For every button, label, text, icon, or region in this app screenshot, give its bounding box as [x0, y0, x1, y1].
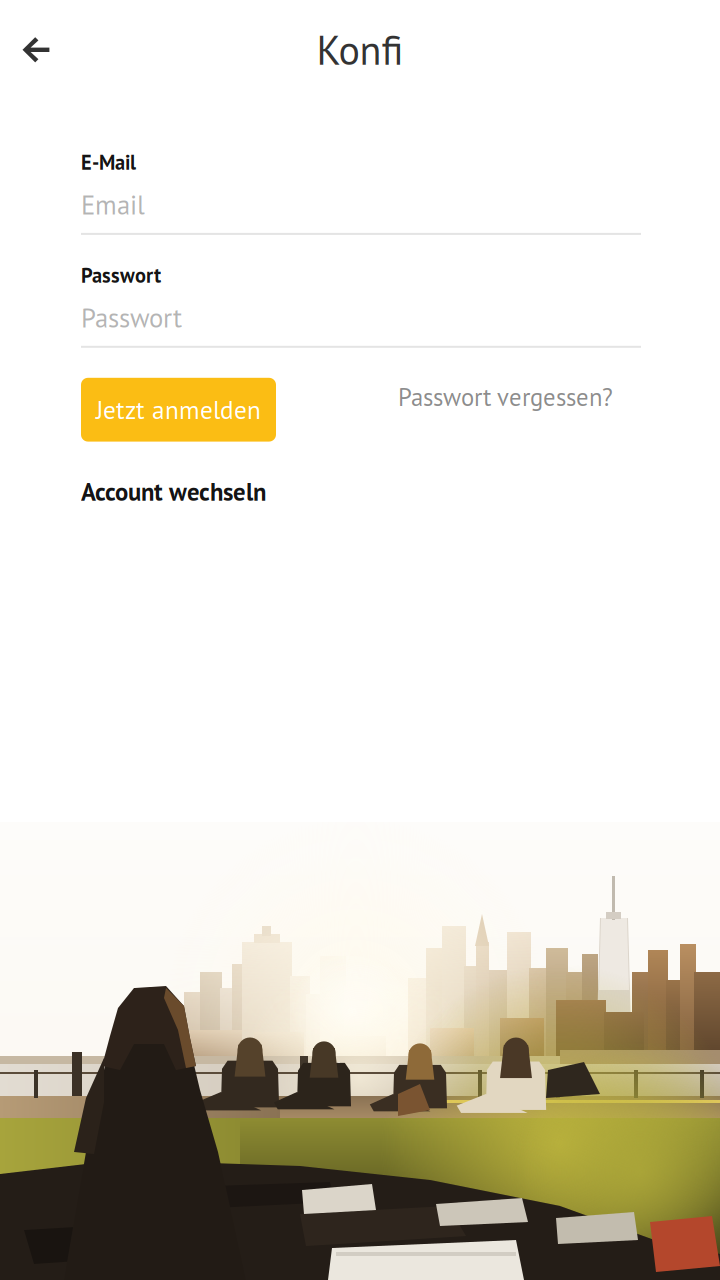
- staticText: Email: [81, 187, 145, 222]
- staticText: Passwort: [81, 262, 161, 288]
- button[interactable]: Jetzt anmelden: [81, 378, 276, 442]
- staticText: Account wechseln: [81, 476, 266, 507]
- staticText: Passwort: [81, 300, 182, 335]
- staticText: E-Mail: [81, 149, 136, 175]
- button[interactable]: Account wechseln: [81, 476, 266, 507]
- staticText: Passwort vergessen?: [398, 381, 613, 413]
- staticText: Konfi: [316, 24, 403, 76]
- staticText: Jetzt anmelden: [96, 393, 261, 426]
- button[interactable]: Back: [0, 18, 70, 82]
- button[interactable]: Passwort vergessen?: [398, 378, 613, 413]
